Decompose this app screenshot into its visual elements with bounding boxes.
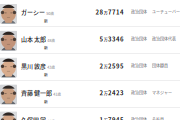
staticText: 山本 太郎 bbox=[21, 35, 46, 43]
staticText: 2423 bbox=[108, 88, 124, 97]
staticText: 政治団体 bbox=[131, 90, 147, 96]
staticText: 万 bbox=[104, 118, 108, 120]
button[interactable]: 黒川 敦彦 bbox=[0, 54, 180, 81]
staticText: 48歳 bbox=[47, 38, 55, 43]
button[interactable]: 久保田 学 bbox=[0, 108, 180, 120]
staticText: 新 bbox=[44, 99, 48, 104]
staticText: 新 bbox=[44, 18, 48, 23]
staticText: 2 bbox=[99, 88, 103, 97]
staticText: 政治団体代表 bbox=[152, 36, 176, 42]
staticText: 政治団体 bbox=[131, 9, 147, 15]
staticText: 7714 bbox=[108, 8, 124, 16]
staticText: 43歳 bbox=[47, 64, 55, 70]
staticText: 5 bbox=[99, 35, 103, 43]
staticText: 団体職員 bbox=[152, 63, 168, 69]
staticText: 政治団体 bbox=[131, 117, 147, 120]
staticText: 新 bbox=[44, 45, 48, 50]
staticText: 3346 bbox=[108, 35, 124, 43]
staticText: 7945 bbox=[108, 115, 124, 120]
button[interactable]: ガーシー bbox=[0, 0, 180, 27]
button[interactable]: 斉藤 健一郎 bbox=[0, 81, 180, 107]
staticText: 万 bbox=[104, 91, 108, 97]
staticText: 新 bbox=[44, 72, 48, 77]
button[interactable]: 山本 太郎 bbox=[0, 27, 180, 54]
staticText: 会社員 bbox=[152, 117, 164, 120]
staticText: 41歳 bbox=[53, 91, 61, 97]
staticText: マネジャー bbox=[152, 90, 172, 96]
staticText: 久保田 学 bbox=[21, 115, 46, 120]
staticText: 万 bbox=[104, 64, 108, 70]
staticText: 2595 bbox=[108, 61, 124, 70]
staticText: 政治団体 bbox=[131, 36, 147, 42]
staticText: 2 bbox=[99, 61, 103, 70]
staticText: 28 bbox=[95, 8, 103, 16]
staticText: 万 bbox=[104, 37, 108, 43]
staticText: 1 bbox=[99, 115, 103, 120]
staticText: 黒川 敦彦 bbox=[21, 61, 46, 70]
staticText: 政治団体 bbox=[131, 63, 147, 69]
staticText: 44歳 bbox=[47, 118, 55, 120]
staticText: ユーチューバー bbox=[152, 9, 180, 15]
staticText: 50歳 bbox=[46, 11, 54, 16]
staticText: 斉藤 健一郎 bbox=[21, 88, 52, 97]
staticText: ガーシー bbox=[21, 8, 45, 16]
staticText: 万 bbox=[104, 10, 108, 16]
